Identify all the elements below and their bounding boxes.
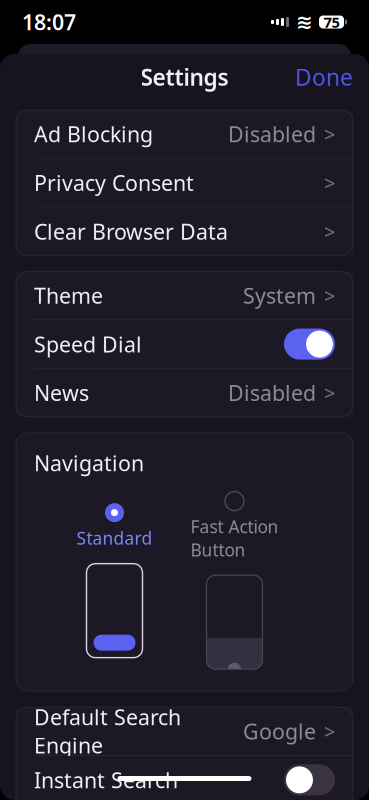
staticText: Fast Action Button (190, 515, 278, 561)
staticText: News (34, 379, 89, 407)
staticText: Theme (34, 281, 103, 309)
button[interactable]: Ad Blocking (16, 110, 353, 158)
button[interactable]: Done (279, 54, 369, 100)
staticText: Disabled (228, 379, 316, 407)
staticText: Google (243, 717, 316, 745)
staticText: > (324, 718, 335, 744)
staticText: Settings (140, 62, 228, 92)
staticText: Instant Search (34, 766, 178, 794)
staticText: 75 (323, 12, 339, 32)
button[interactable]: Instant Search (16, 756, 353, 800)
button[interactable]: Theme (16, 271, 353, 319)
staticText: ≋ (296, 11, 313, 33)
staticText: Ad Blocking (34, 120, 153, 148)
staticText: Standard (76, 527, 152, 550)
button[interactable]: Default Search Engine (16, 707, 353, 755)
staticText: > (324, 379, 335, 406)
staticText: > (324, 121, 335, 147)
staticText: Navigation (34, 449, 144, 477)
button[interactable]: Privacy Consent (16, 159, 353, 207)
staticText: Default Search Engine (34, 703, 181, 759)
staticText: 18:07 (22, 8, 76, 36)
button[interactable]: Speed Dial (16, 320, 353, 368)
staticText: Speed Dial (34, 330, 142, 358)
staticText: > (324, 169, 335, 196)
button[interactable]: Standard (64, 503, 164, 658)
staticText: System (243, 281, 316, 309)
staticText: Done (295, 62, 353, 92)
button[interactable]: News (16, 369, 353, 417)
staticText: > (324, 218, 335, 245)
staticText: Privacy Consent (34, 168, 194, 197)
staticText: Disabled (228, 120, 316, 148)
button[interactable]: Fast Action Button (164, 491, 304, 669)
button[interactable]: Clear Browser Data (16, 207, 353, 255)
staticText: Clear Browser Data (34, 217, 228, 245)
staticText: > (324, 282, 335, 309)
